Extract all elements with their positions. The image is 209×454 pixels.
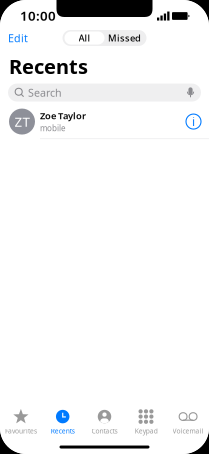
- button[interactable]: Keypad: [125, 405, 167, 439]
- staticText: Edit: [8, 31, 28, 45]
- staticText: Favourites: [5, 427, 37, 435]
- button[interactable]: Missed: [104, 31, 144, 44]
- staticText: mobile: [40, 123, 66, 133]
- staticText: Keypad: [135, 427, 158, 435]
- button[interactable]: More info: [178, 105, 209, 139]
- staticText: Contacts: [91, 427, 117, 435]
- button[interactable]: Recents: [42, 405, 84, 439]
- staticText: Search: [28, 85, 62, 100]
- staticText: Voicemail: [173, 427, 204, 435]
- staticText: Recents: [51, 427, 75, 435]
- button[interactable]: All: [64, 31, 104, 44]
- button[interactable]: Voicemail: [167, 405, 209, 439]
- staticText: Missed: [108, 32, 141, 44]
- button[interactable]: ZT: [0, 105, 178, 139]
- button[interactable]: Favourites: [0, 405, 42, 439]
- button[interactable]: Edit: [0, 27, 28, 49]
- staticText: Recents: [9, 53, 88, 80]
- staticText: 10:00: [20, 7, 56, 24]
- staticText: Zoe Taylor: [40, 110, 86, 122]
- button[interactable]: Contacts: [84, 405, 125, 439]
- staticText: All: [78, 32, 90, 44]
- staticText: ZT: [14, 113, 29, 130]
- staticText: i: [192, 114, 195, 129]
